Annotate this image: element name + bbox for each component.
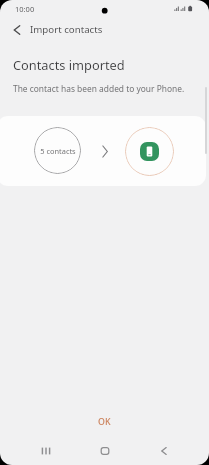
staticText: 10:00 — [15, 4, 35, 14]
button[interactable]: 5 contacts — [34, 127, 81, 174]
button[interactable]: Recent apps — [31, 441, 61, 461]
button[interactable]: Phone — [125, 127, 174, 176]
button[interactable]: Navigate up — [6, 19, 28, 40]
button[interactable]: Back — [149, 441, 179, 461]
staticText: Import contacts — [30, 23, 103, 36]
staticText: The contact has been added to your Phone… — [13, 83, 185, 94]
staticText: Contacts imported — [13, 56, 125, 73]
staticText: 5 contacts — [40, 146, 76, 156]
staticText: OK — [98, 416, 111, 428]
button[interactable]: Home — [90, 441, 120, 461]
button[interactable]: OK — [82, 412, 127, 432]
